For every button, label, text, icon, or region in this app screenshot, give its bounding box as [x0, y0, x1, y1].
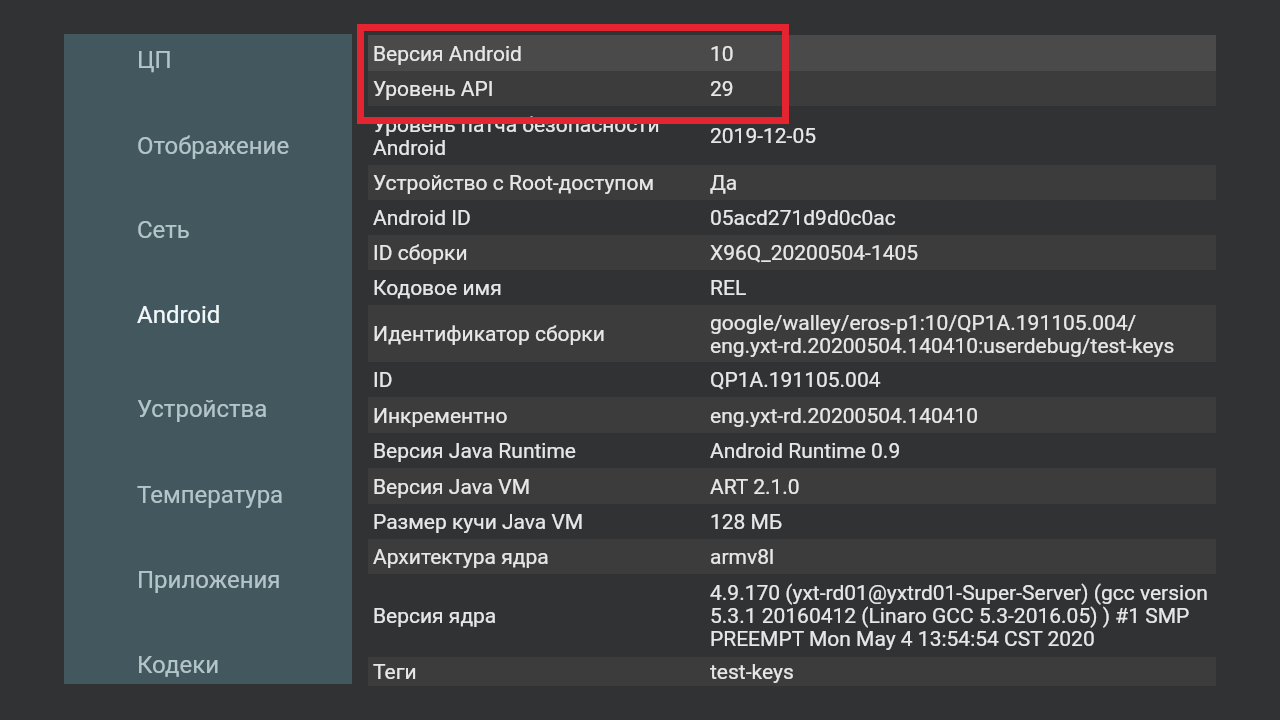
button[interactable]: Инкрементно [368, 397, 1216, 433]
other: Highlighted: Android version and API lev… [357, 24, 789, 124]
button[interactable]: Размер кучи Java VM [368, 504, 1216, 539]
button[interactable]: Версия Android [368, 35, 1216, 71]
button[interactable]: Версия ядра [368, 574, 1216, 657]
staticText: 29 [710, 77, 734, 100]
staticText: 05acd271d9d0c0ac [710, 206, 896, 229]
staticText: QP1A.191105.004 [710, 368, 881, 391]
staticText: Версия Java VM [373, 475, 710, 498]
button[interactable]: ЦП [64, 35, 352, 85]
staticText: 128 МБ [710, 510, 783, 533]
staticText: Устройство с Root-доступом [373, 171, 710, 194]
staticText: Архитектура ядра [373, 545, 710, 568]
button[interactable]: Кодеки [64, 640, 352, 684]
button[interactable]: ID сборки [368, 235, 1216, 270]
staticText: ID сборки [373, 241, 710, 264]
staticText: Температура [137, 481, 284, 509]
staticText: Кодеки [137, 651, 219, 679]
button[interactable]: Уровень патча безопасности Android [368, 106, 1216, 165]
staticText: Уровень API [373, 77, 710, 100]
staticText: Отображение [137, 132, 290, 160]
staticText: eng.yxt-rd.20200504.140410 [710, 404, 979, 427]
staticText: Уровень патча безопасности Android [373, 113, 710, 159]
button[interactable]: Идентификатор сборки [368, 305, 1216, 362]
staticText: Версия Android [373, 42, 710, 65]
button[interactable]: Android [64, 290, 352, 340]
button[interactable]: Теги [368, 657, 1216, 686]
staticText: google/walley/eros-p1:10/QP1A.191105.004… [710, 311, 1175, 357]
staticText: 10 [710, 42, 734, 65]
staticText: Сеть [137, 216, 190, 244]
button[interactable]: Android ID [368, 200, 1216, 235]
staticText: 4.9.170 (yxt-rd01@yxtrd01-Super-Server) … [710, 581, 1208, 650]
staticText: REL [710, 276, 747, 299]
staticText: Android Runtime 0.9 [710, 439, 901, 462]
button[interactable]: ID [368, 362, 1216, 397]
button[interactable]: Устройство с Root-доступом [368, 165, 1216, 200]
staticText: ID [373, 368, 710, 391]
staticText: Приложения [137, 566, 281, 594]
button[interactable]: Архитектура ядра [368, 539, 1216, 574]
staticText: Кодовое имя [373, 276, 710, 299]
staticText: Теги [373, 660, 710, 683]
staticText: 2019-12-05 [710, 124, 817, 147]
button[interactable]: Устройства [64, 384, 352, 434]
staticText: Android ID [373, 206, 710, 229]
staticText: Инкрементно [373, 404, 710, 427]
button[interactable]: Кодовое имя [368, 270, 1216, 305]
staticText: Размер кучи Java VM [373, 510, 710, 533]
staticText: Android [137, 301, 221, 329]
button[interactable]: Приложения [64, 555, 352, 605]
staticText: Версия ядра [373, 604, 710, 627]
staticText: Версия Java Runtime [373, 439, 710, 462]
button[interactable]: Температура [64, 470, 352, 520]
staticText: ЦП [137, 46, 172, 74]
button[interactable]: Уровень API [368, 71, 1216, 106]
staticText: Устройства [137, 395, 268, 423]
staticText: X96Q_20200504-1405 [710, 241, 919, 264]
staticText: test-keys [710, 660, 794, 683]
button[interactable]: Сеть [64, 205, 352, 255]
staticText: ART 2.1.0 [710, 475, 800, 498]
button[interactable]: Версия Java VM [368, 468, 1216, 504]
staticText: Да [710, 171, 738, 194]
button[interactable]: Отображение [64, 121, 352, 171]
button[interactable]: Версия Java Runtime [368, 433, 1216, 468]
staticText: armv8l [710, 545, 775, 568]
staticText: Идентификатор сборки [373, 322, 710, 345]
